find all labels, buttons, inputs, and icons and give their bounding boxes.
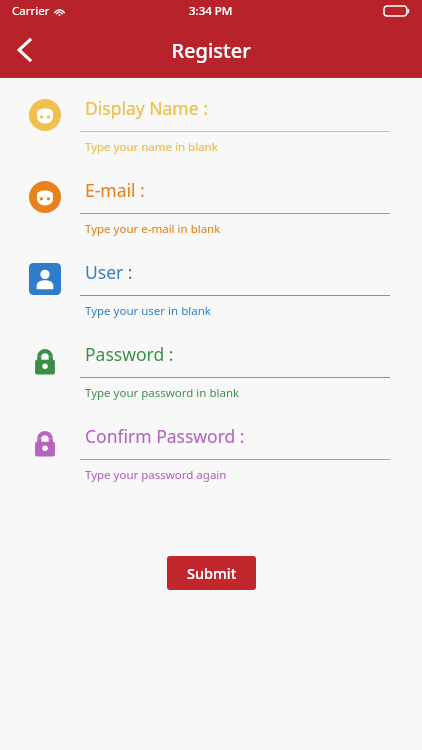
staticText: Type your name in blank <box>85 139 218 155</box>
staticText: User : <box>85 260 133 284</box>
button[interactable]: User : <box>0 250 422 332</box>
staticText: Display Name : <box>85 96 208 120</box>
button[interactable]: Password : <box>0 332 422 414</box>
staticText: Register <box>171 37 251 64</box>
staticText: Type your password again <box>85 467 227 483</box>
button[interactable]: E-mail : <box>0 168 422 250</box>
staticText: Type your e-mail in blank <box>85 221 221 237</box>
staticText: 3:34 PM <box>189 3 233 19</box>
staticText: Confirm Password : <box>85 424 245 448</box>
staticText: E-mail : <box>85 178 145 202</box>
staticText: Submit <box>187 563 237 583</box>
staticText: Type your user in blank <box>85 303 211 319</box>
button[interactable]: Back <box>0 26 48 74</box>
button[interactable]: Submit <box>167 556 256 590</box>
staticText: Password : <box>85 342 174 366</box>
staticText: Carrier <box>12 3 50 19</box>
button[interactable]: Display Name : <box>0 86 422 168</box>
staticText: Type your password in blank <box>85 385 240 401</box>
button[interactable]: Confirm Password : <box>0 414 422 496</box>
